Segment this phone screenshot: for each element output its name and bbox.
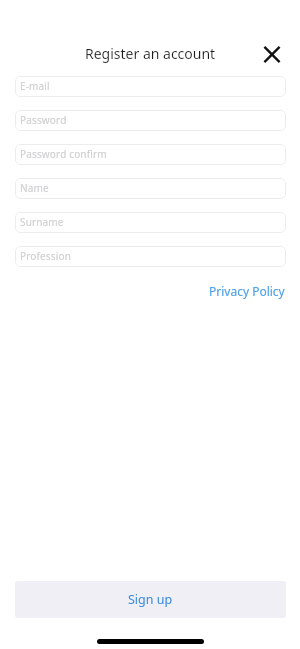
staticText: E-mail: [20, 79, 50, 93]
button[interactable]: Sign up: [15, 581, 286, 618]
staticText: Sign up: [128, 591, 173, 608]
button[interactable]: Password: [15, 110, 286, 131]
button[interactable]: Name: [15, 178, 286, 199]
staticText: Privacy Policy: [209, 283, 285, 299]
button[interactable]: E-mail: [15, 76, 286, 97]
staticText: Password: [20, 113, 67, 127]
button[interactable]: Profession: [15, 246, 286, 267]
button[interactable]: Password confirm: [15, 144, 286, 165]
staticText: Password confirm: [20, 147, 107, 161]
button[interactable]: Close: [255, 37, 289, 71]
button[interactable]: Privacy Policy: [208, 281, 286, 301]
staticText: Register an account: [85, 44, 216, 63]
button[interactable]: Surname: [15, 212, 286, 233]
staticText: Name: [20, 181, 49, 195]
staticText: Surname: [20, 215, 64, 229]
staticText: Profession: [20, 249, 71, 263]
